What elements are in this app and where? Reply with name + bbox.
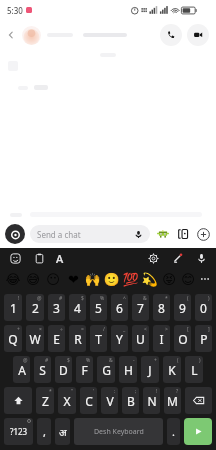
- staticText: ÷: [60, 326, 63, 333]
- button[interactable]: U: [132, 325, 149, 352]
- button[interactable]: G: [97, 356, 115, 383]
- button[interactable]: Desh Keyboard: [74, 418, 163, 445]
- button[interactable]: Cards: [175, 226, 191, 242]
- staticText: 😊: [181, 272, 195, 287]
- staticText: 8: [158, 300, 165, 316]
- button[interactable]: E: [48, 325, 65, 352]
- button[interactable]: R: [69, 325, 86, 352]
- button[interactable]: Profile: [22, 26, 41, 45]
- button[interactable]: Backspace: [185, 387, 212, 414]
- button[interactable]: 9: [174, 294, 191, 321]
- button[interactable]: N: [143, 387, 160, 414]
- staticText: >: [165, 326, 168, 333]
- button[interactable]: ?123: [4, 418, 33, 445]
- button[interactable]: 4: [69, 294, 86, 321]
- button[interactable]: 💯: [121, 268, 140, 290]
- button[interactable]: 😂: [3, 268, 23, 290]
- button[interactable]: J: [141, 356, 159, 383]
- button[interactable]: X: [58, 387, 76, 414]
- button[interactable]: M: [164, 387, 181, 414]
- button[interactable]: Send: [184, 418, 212, 445]
- staticText: ^: [123, 295, 126, 302]
- button[interactable]: Y: [111, 325, 128, 352]
- staticText: .: [172, 424, 175, 439]
- button[interactable]: Stickers: [8, 251, 22, 265]
- staticText: (: [187, 295, 189, 302]
- button[interactable]: अ: [55, 418, 70, 445]
- button[interactable]: 6: [111, 294, 128, 321]
- staticText: J: [148, 362, 152, 378]
- staticText: 2: [32, 300, 39, 316]
- staticText: O: [178, 331, 188, 347]
- button[interactable]: Call: [160, 24, 182, 46]
- button[interactable]: .: [167, 418, 180, 445]
- staticText: #: [59, 295, 63, 302]
- staticText: !: [18, 295, 20, 302]
- staticText: +: [17, 326, 20, 333]
- button[interactable]: 5: [90, 294, 107, 321]
- button[interactable]: Voice input: [194, 251, 208, 265]
- button[interactable]: 😅: [23, 268, 43, 290]
- staticText: 😶: [46, 272, 60, 287]
- button[interactable]: K: [163, 356, 181, 383]
- button[interactable]: A: [13, 356, 30, 383]
- button[interactable]: 0: [195, 294, 212, 321]
- staticText: ;: [135, 388, 137, 395]
- button[interactable]: Send a chat: [30, 225, 150, 243]
- staticText: Send a chat: [37, 229, 81, 240]
- button[interactable]: Camera: [5, 224, 25, 244]
- button[interactable]: 😶: [43, 268, 63, 290]
- button[interactable]: 7: [132, 294, 149, 321]
- button[interactable]: 1: [4, 294, 22, 321]
- button[interactable]: 8: [153, 294, 170, 321]
- staticText: &: [143, 295, 147, 302]
- button[interactable]: O: [174, 325, 191, 352]
- staticText: Q: [8, 331, 18, 347]
- staticText: Desh Keyboard: [94, 427, 144, 437]
- button[interactable]: D: [55, 356, 72, 383]
- staticText: !: [156, 388, 158, 395]
- button[interactable]: 🙂: [102, 268, 121, 290]
- button[interactable]: V: [101, 387, 118, 414]
- button[interactable]: ,: [37, 418, 51, 445]
- button[interactable]: B: [122, 387, 139, 414]
- staticText: 4: [74, 300, 81, 316]
- button[interactable]: Handwriting: [170, 251, 184, 265]
- staticText: R: [74, 331, 82, 347]
- button[interactable]: More options: [195, 226, 211, 242]
- staticText: 3: [53, 300, 60, 316]
- button[interactable]: 2: [26, 294, 44, 321]
- button[interactable]: Clipboard: [32, 251, 46, 265]
- button[interactable]: 😝: [159, 268, 178, 290]
- staticText: $: [81, 295, 84, 302]
- button[interactable]: 💫: [140, 268, 159, 290]
- button[interactable]: W: [26, 325, 44, 352]
- staticText: K: [168, 362, 176, 378]
- button[interactable]: P: [195, 325, 212, 352]
- button[interactable]: T: [90, 325, 107, 352]
- button[interactable]: Video call: [187, 24, 209, 46]
- button[interactable]: Shift: [4, 387, 32, 414]
- staticText: /: [103, 326, 105, 333]
- button[interactable]: Z: [36, 387, 54, 414]
- button[interactable]: S: [34, 356, 51, 383]
- button[interactable]: More emoji: [197, 268, 213, 290]
- button[interactable]: Stickers: [155, 226, 171, 242]
- staticText: 0: [200, 300, 207, 316]
- staticText: 😂: [5, 272, 21, 287]
- button[interactable]: Settings: [146, 251, 160, 265]
- button[interactable]: Back: [0, 20, 22, 50]
- button[interactable]: ❤️: [63, 268, 83, 290]
- staticText: 7: [137, 300, 144, 316]
- button[interactable]: H: [119, 356, 137, 383]
- button[interactable]: Q: [4, 325, 22, 352]
- button[interactable]: L: [185, 356, 203, 383]
- button[interactable]: 😊: [178, 268, 197, 290]
- staticText: S: [39, 362, 46, 378]
- button[interactable]: I: [153, 325, 170, 352]
- button[interactable]: 3: [48, 294, 65, 321]
- button[interactable]: F: [76, 356, 93, 383]
- button[interactable]: 🙌: [83, 268, 102, 290]
- button[interactable]: C: [80, 387, 97, 414]
- staticText: +: [154, 357, 157, 364]
